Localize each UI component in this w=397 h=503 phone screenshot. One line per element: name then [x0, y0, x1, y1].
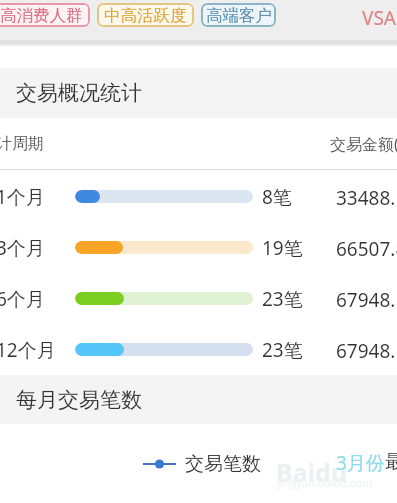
staticText: 交易笔数 [185, 452, 261, 476]
staticText: 交易概况统计 [16, 80, 142, 106]
staticText: 6个月 [0, 286, 45, 312]
staticText: 1个月 [0, 184, 45, 210]
staticText: VSA [362, 5, 396, 31]
staticText: 19笔 [262, 235, 303, 261]
staticText: 高消费人群 [0, 5, 83, 26]
button[interactable]: 1个月 [0, 170, 397, 221]
button[interactable]: 12个月 [0, 323, 397, 374]
staticText: 中高活跃度 [104, 5, 187, 26]
button[interactable]: 6个月 [0, 272, 397, 323]
staticText: jingyan.baidu.com [277, 475, 373, 490]
button[interactable]: 交易笔数 [143, 452, 219, 476]
staticText: 最 [385, 450, 397, 474]
staticText: 3月份 [336, 450, 385, 476]
staticText: 交易金额( [330, 133, 397, 155]
button[interactable]: 高端客户 [201, 3, 276, 27]
staticText: 8笔 [262, 184, 292, 210]
staticText: 高端客户 [206, 5, 272, 26]
staticText: 67948. [336, 338, 396, 364]
staticText: Baidu [276, 455, 348, 489]
staticText: 3个月 [0, 235, 45, 261]
staticText: 12个月 [0, 337, 56, 363]
staticText: 67948. [336, 287, 396, 313]
staticText: 计周期 [0, 134, 44, 154]
staticText: 23笔 [262, 286, 303, 312]
button[interactable]: 3个月 [0, 221, 397, 272]
staticText: 每月交易笔数 [16, 387, 142, 413]
button[interactable]: 高消费人群 [0, 3, 90, 27]
staticText: 23笔 [262, 337, 303, 363]
staticText: 66507.8 [336, 236, 397, 262]
button[interactable]: 中高活跃度 [97, 3, 194, 27]
staticText: 33488. [336, 185, 396, 211]
